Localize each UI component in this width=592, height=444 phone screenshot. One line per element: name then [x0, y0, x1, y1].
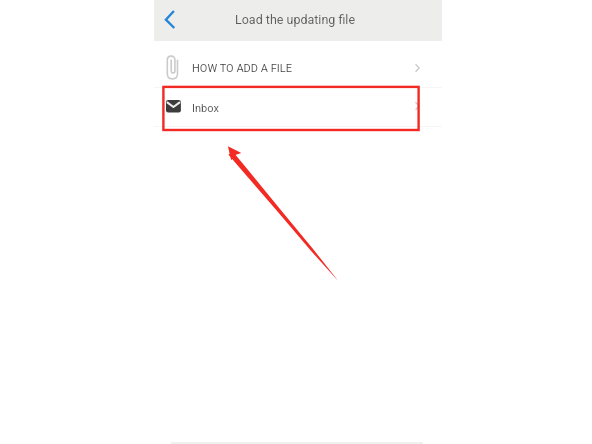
staticText: HOW TO ADD A FILE [192, 62, 292, 75]
button[interactable]: Inbox [154, 87, 442, 126]
staticText: Inbox [192, 102, 219, 115]
button[interactable]: HOW TO ADD A FILE [154, 41, 442, 87]
staticText: Load the updating file [235, 12, 356, 27]
button[interactable]: Back [158, 5, 184, 35]
